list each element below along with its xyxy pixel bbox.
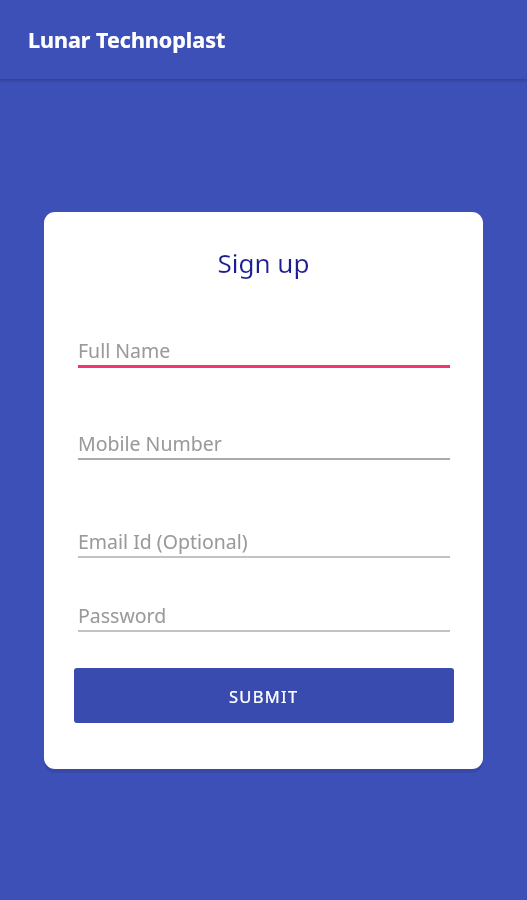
staticText: SUBMIT <box>229 685 299 707</box>
button[interactable]: Full Name <box>78 335 450 368</box>
staticText: Email Id (Optional) <box>78 528 248 555</box>
staticText: Sign up <box>44 245 483 280</box>
staticText: Password <box>78 602 167 629</box>
button[interactable]: Password <box>78 600 450 632</box>
button[interactable]: Email Id (Optional) <box>78 526 450 558</box>
staticText: Mobile Number <box>78 430 222 457</box>
button[interactable]: SUBMIT <box>74 668 454 723</box>
staticText: Lunar Technoplast <box>28 25 226 54</box>
button[interactable]: Mobile Number <box>78 428 450 460</box>
staticText: Full Name <box>78 337 171 364</box>
